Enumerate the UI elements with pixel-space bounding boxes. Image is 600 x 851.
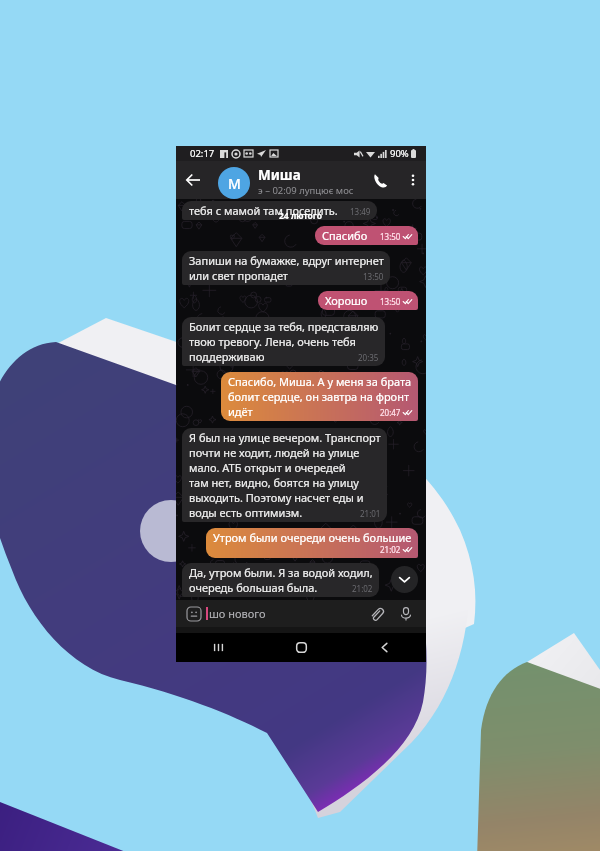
button[interactable]: More options — [401, 168, 425, 192]
button[interactable]: Home — [260, 633, 343, 662]
button[interactable]: Да, утром были. Я за водой ходил, очеред… — [182, 563, 379, 597]
staticText: э – 02:09 лупцює мос — [258, 184, 354, 197]
staticText: 13:50 — [380, 231, 401, 242]
staticText: 21:01 — [360, 508, 381, 519]
button[interactable]: Утром были очереди очень большие — [206, 528, 418, 558]
staticText: Болит сердце за тебя, представляю твою т… — [189, 319, 379, 364]
button[interactable]: Я был на улице вечером. Транспорт почти … — [182, 428, 387, 522]
button[interactable]: Call — [366, 166, 394, 194]
staticText: шо нового — [209, 606, 266, 621]
staticText: 13:50 — [380, 296, 401, 307]
button[interactable]: Болит сердце за тебя, представляю твою т… — [182, 317, 385, 366]
button[interactable]: Спасибо — [315, 226, 418, 245]
staticText: тебя с мамой там поселить. — [189, 203, 371, 218]
button[interactable]: тебя с мамой там поселить. — [182, 201, 377, 220]
staticText: 21:02 — [352, 583, 373, 594]
staticText: Я был на улице вечером. Транспорт почти … — [189, 430, 381, 520]
staticText: Спасибо, Миша. А у меня за брата болит с… — [228, 374, 412, 419]
staticText: 02:17 — [190, 147, 215, 160]
staticText: Запиши на бумажке, вдруг интернет или св… — [189, 253, 384, 283]
staticText: 13:50 — [363, 271, 384, 282]
staticText: M — [228, 174, 241, 193]
staticText: Миша — [258, 166, 301, 184]
button[interactable]: Emoji — [187, 607, 201, 621]
staticText: 13:49 — [350, 206, 371, 217]
staticText: Да, утром были. Я за водой ходил, очеред… — [189, 565, 373, 595]
staticText: Утром были очереди очень большие — [213, 530, 412, 545]
staticText: Спасибо — [322, 228, 412, 243]
button[interactable]: Recent apps — [176, 633, 260, 662]
staticText: 20:35 — [358, 352, 379, 363]
staticText: 20:47 — [380, 407, 401, 418]
button[interactable]: Запиши на бумажке, вдруг интернет или св… — [182, 251, 390, 285]
button[interactable]: Attach — [365, 603, 387, 625]
button[interactable]: Scroll to bottom — [391, 566, 418, 593]
button[interactable]: Хорошо — [318, 291, 418, 310]
staticText: Хорошо — [325, 293, 412, 308]
staticText: 21:02 — [380, 544, 401, 555]
staticText: 24 лютого — [279, 210, 323, 222]
staticText: 90% — [390, 147, 409, 160]
button[interactable]: Voice message — [395, 603, 417, 625]
button[interactable]: Спасибо, Миша. А у меня за брата болит с… — [221, 372, 418, 421]
button[interactable]: Back — [343, 633, 426, 662]
button[interactable]: Back — [176, 161, 210, 199]
